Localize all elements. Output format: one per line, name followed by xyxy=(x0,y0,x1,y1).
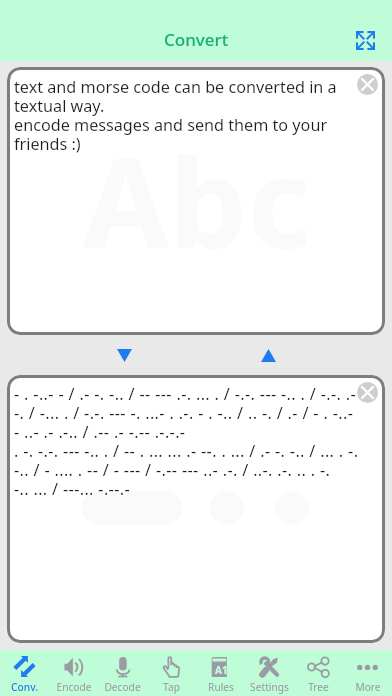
staticText: Encode xyxy=(56,680,92,694)
button[interactable]: Tree xyxy=(294,650,343,696)
button[interactable]: A1 xyxy=(196,650,245,696)
button[interactable]: More xyxy=(343,650,392,696)
staticText: text and morse code can be converted in … xyxy=(14,76,349,155)
staticText: Tap xyxy=(163,680,180,694)
button[interactable]: Fullscreen xyxy=(351,26,379,54)
button[interactable]: Tap xyxy=(147,650,196,696)
staticText: More xyxy=(355,680,381,694)
button[interactable]: Conv. xyxy=(0,650,49,696)
staticText: - . -..- - / .- -. -.. / -- --- .-. ... … xyxy=(14,383,363,500)
staticText: Rules xyxy=(208,680,234,694)
button[interactable]: Clear xyxy=(357,382,378,403)
staticText: Conv. xyxy=(11,680,38,694)
button[interactable]: Encode xyxy=(49,650,98,696)
staticText: Abc xyxy=(83,115,312,284)
staticText: Settings xyxy=(250,680,289,694)
button[interactable]: Encode to morse xyxy=(106,337,142,373)
button[interactable]: Decode xyxy=(98,650,147,696)
staticText: A1 xyxy=(215,663,228,677)
staticText: Decode xyxy=(104,680,141,694)
button[interactable]: Settings xyxy=(245,650,294,696)
button[interactable]: Clear xyxy=(357,74,378,95)
button[interactable]: Decode to text xyxy=(250,337,286,373)
staticText: Convert xyxy=(164,28,229,51)
staticText: Tree xyxy=(308,680,329,694)
